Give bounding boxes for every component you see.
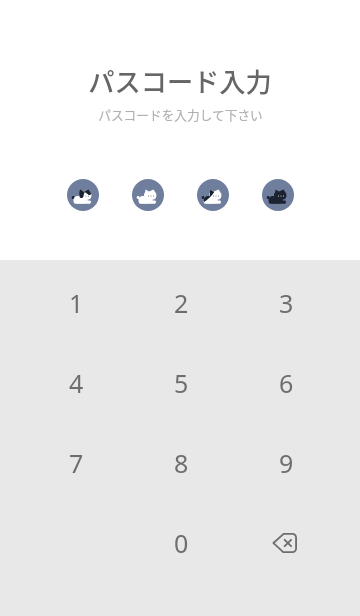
button[interactable]: 5 bbox=[129, 343, 234, 423]
staticText: パスコードを入力して下さい bbox=[98, 105, 263, 123]
button[interactable]: 4 bbox=[23, 343, 129, 423]
staticText: 2 bbox=[174, 286, 189, 320]
button[interactable]: 2 bbox=[129, 263, 234, 343]
button[interactable]: Delete bbox=[234, 503, 339, 583]
other: Delete bbox=[272, 533, 297, 553]
staticText: 5 bbox=[174, 366, 189, 400]
staticText: 6 bbox=[279, 366, 294, 400]
button[interactable]: 8 bbox=[129, 423, 234, 503]
staticText: 4 bbox=[69, 366, 84, 400]
staticText: 3 bbox=[279, 286, 294, 320]
staticText: 1 bbox=[69, 286, 84, 320]
button[interactable]: 7 bbox=[23, 423, 129, 503]
button[interactable]: 0 bbox=[129, 503, 234, 583]
button[interactable]: 3 bbox=[234, 263, 339, 343]
staticText: 7 bbox=[69, 446, 84, 480]
staticText: パスコード入力 bbox=[88, 62, 272, 100]
button[interactable]: 9 bbox=[234, 423, 339, 503]
staticText: 0 bbox=[174, 526, 189, 560]
button[interactable]: 6 bbox=[234, 343, 339, 423]
staticText: 9 bbox=[279, 446, 294, 480]
staticText: 8 bbox=[174, 446, 189, 480]
button[interactable]: 1 bbox=[23, 263, 129, 343]
